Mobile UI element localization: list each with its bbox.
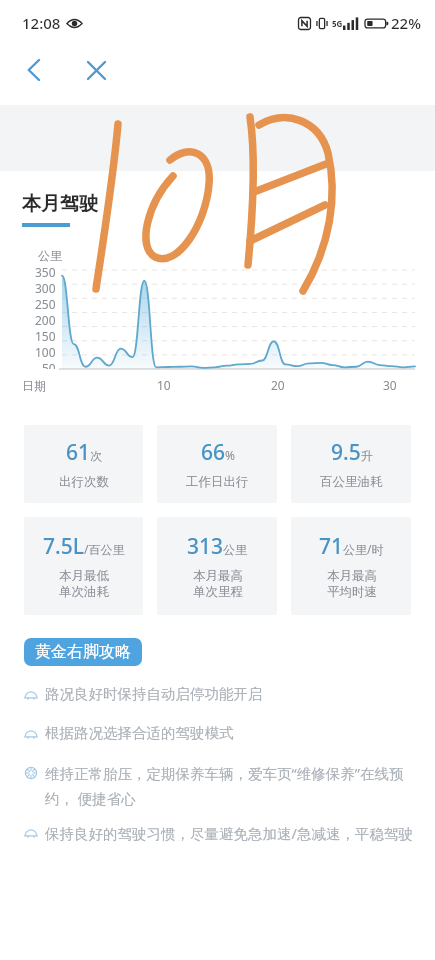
staticText: 20 xyxy=(271,377,285,393)
staticText: 维持正常胎压，定期保养车辆，爱车页“维修保养”在线预约， 便捷省心 xyxy=(45,763,421,808)
staticText: 公里 xyxy=(38,248,62,263)
staticText: 313公里 xyxy=(187,532,248,561)
staticText: 路况良好时保持自动启停功能开启 xyxy=(45,685,263,703)
button[interactable]: 71公里/时 xyxy=(291,517,411,615)
staticText: 本月最高 xyxy=(327,568,377,584)
staticText: 61次 xyxy=(66,438,103,467)
staticText: 9.5升 xyxy=(331,438,373,467)
staticText: 出行次数 xyxy=(59,474,109,490)
staticText: 50 xyxy=(42,360,56,369)
staticText: 平均时速 xyxy=(327,584,377,600)
button[interactable]: 黄金右脚攻略 xyxy=(35,642,131,662)
staticText: 30 xyxy=(383,377,397,393)
staticText: 71公里/时 xyxy=(319,532,384,561)
button[interactable]: 7.5L/百公里 xyxy=(24,517,143,615)
staticText: 单次油耗 xyxy=(59,584,109,600)
staticText: 本月最低 xyxy=(59,568,109,584)
staticText: 日期 xyxy=(22,378,46,393)
staticText: 保持良好的驾驶习惯，尽量避免急加速/急减速，平稳驾驶 xyxy=(45,823,413,843)
button[interactable]: Back xyxy=(15,51,53,89)
staticText: 300 xyxy=(35,280,56,296)
staticText: 百公里油耗 xyxy=(320,474,383,490)
staticText: 根据路况选择合适的驾驶模式 xyxy=(45,724,234,742)
staticText: 单次里程 xyxy=(193,584,243,600)
staticText: 10 xyxy=(157,377,171,393)
staticText: 66% xyxy=(201,438,235,467)
staticText: 5G xyxy=(332,18,343,29)
staticText: 黄金右脚攻略 xyxy=(35,642,131,662)
staticText: 本月驾驶 xyxy=(22,192,98,216)
staticText: 工作日出行 xyxy=(186,474,249,490)
button[interactable]: 61次 xyxy=(24,425,143,503)
staticText: 200 xyxy=(35,312,56,328)
staticText: 22% xyxy=(391,13,421,33)
staticText: 350 xyxy=(35,264,56,280)
button[interactable]: 313公里 xyxy=(157,517,277,615)
staticText: 12:08 xyxy=(22,13,61,33)
staticText: 7.5L/百公里 xyxy=(43,532,125,561)
staticText: 100 xyxy=(35,344,56,360)
button[interactable]: 66% xyxy=(157,425,277,503)
staticText: 150 xyxy=(35,328,56,344)
staticText: 250 xyxy=(35,296,56,312)
staticText: 本月最高 xyxy=(193,568,243,584)
button[interactable]: Close xyxy=(77,51,115,89)
button[interactable]: 9.5升 xyxy=(291,425,411,503)
